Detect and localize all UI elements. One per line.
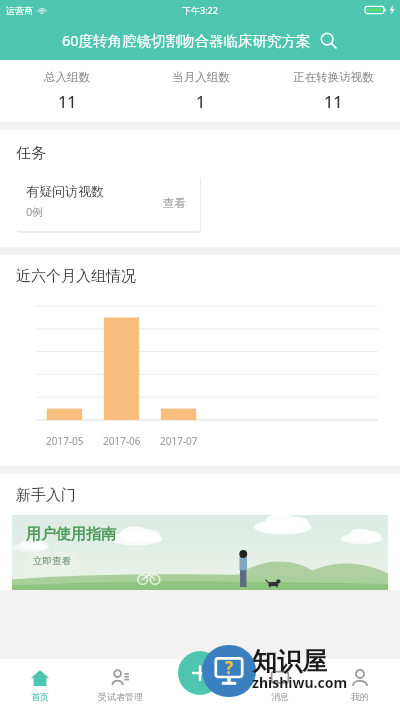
staticText: 用户使用指南: [26, 525, 116, 544]
staticText: 首页: [31, 691, 49, 702]
staticText: 消息: [271, 691, 289, 702]
staticText: ?: [225, 656, 234, 679]
staticText: 有疑问访视数: [26, 183, 104, 199]
staticText: 受试者管理: [98, 691, 143, 702]
button[interactable]: 总入组数: [0, 60, 134, 122]
staticText: 下午3:22: [182, 4, 218, 16]
button[interactable]: 正在转换访视数: [267, 60, 400, 122]
button[interactable]: Add: [178, 651, 222, 695]
staticText: 0例: [26, 204, 44, 219]
staticText: 2017-05: [46, 434, 84, 448]
button[interactable]: 受试者管理: [80, 659, 160, 711]
staticText: zhishiwu.com: [252, 673, 348, 692]
button[interactable]: 首页: [0, 659, 80, 711]
staticText: 当月入组数: [172, 70, 230, 84]
button[interactable]: 消息: [240, 659, 320, 711]
staticText: 11: [58, 91, 77, 113]
staticText: 2017-07: [160, 434, 198, 448]
staticText: 运营商: [6, 5, 33, 16]
staticText: 1: [196, 91, 206, 113]
staticText: 近六个月入组情况: [16, 267, 136, 286]
staticText: 正在转换访视数: [293, 70, 374, 84]
button[interactable]: 用户使用指南: [12, 515, 388, 590]
staticText: 总入组数: [44, 70, 90, 84]
staticText: 查看: [163, 196, 186, 210]
staticText: 知识屋: [252, 646, 327, 677]
button[interactable]: 立即查看: [26, 552, 78, 570]
button[interactable]: 我的: [320, 659, 400, 711]
staticText: 新手入门: [16, 486, 76, 505]
button[interactable]: 当月入组数: [134, 60, 267, 122]
button[interactable]: Search: [317, 29, 339, 51]
staticText: 60度转角腔镜切割吻合器临床研究方案: [62, 30, 311, 50]
staticText: 立即查看: [33, 555, 71, 567]
staticText: 11: [324, 91, 343, 113]
staticText: 2017-06: [103, 434, 141, 448]
staticText: 任务: [16, 144, 46, 163]
button[interactable]: 有疑问访视数: [16, 175, 200, 231]
staticText: 我的: [351, 691, 369, 702]
